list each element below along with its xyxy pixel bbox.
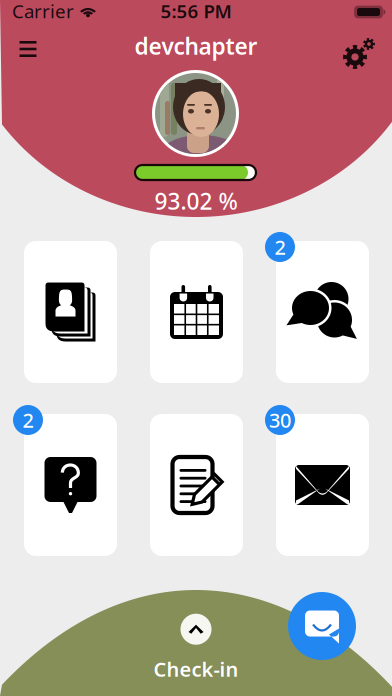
button[interactable]: Calendar: [150, 241, 243, 383]
button[interactable]: Check-in: [126, 611, 266, 685]
button[interactable]: Chat support: [288, 592, 356, 660]
staticText: 93.02 %: [154, 186, 237, 216]
button[interactable]: Settings: [336, 31, 384, 75]
button[interactable]: Questions: [24, 414, 117, 556]
button[interactable]: Contacts: [24, 241, 117, 383]
staticText: 2: [22, 407, 33, 433]
staticText: 2: [274, 234, 285, 260]
staticText: 5:56 PM: [160, 0, 231, 23]
button[interactable]: Mail: [276, 414, 369, 556]
button[interactable]: Notes: [150, 414, 243, 556]
staticText: devchapter: [134, 31, 257, 61]
staticText: Check-in: [153, 656, 238, 682]
button[interactable]: Menu: [5, 27, 51, 71]
button[interactable]: Messages: [276, 241, 369, 383]
staticText: Carrier: [12, 0, 74, 23]
staticText: 30: [269, 407, 291, 433]
